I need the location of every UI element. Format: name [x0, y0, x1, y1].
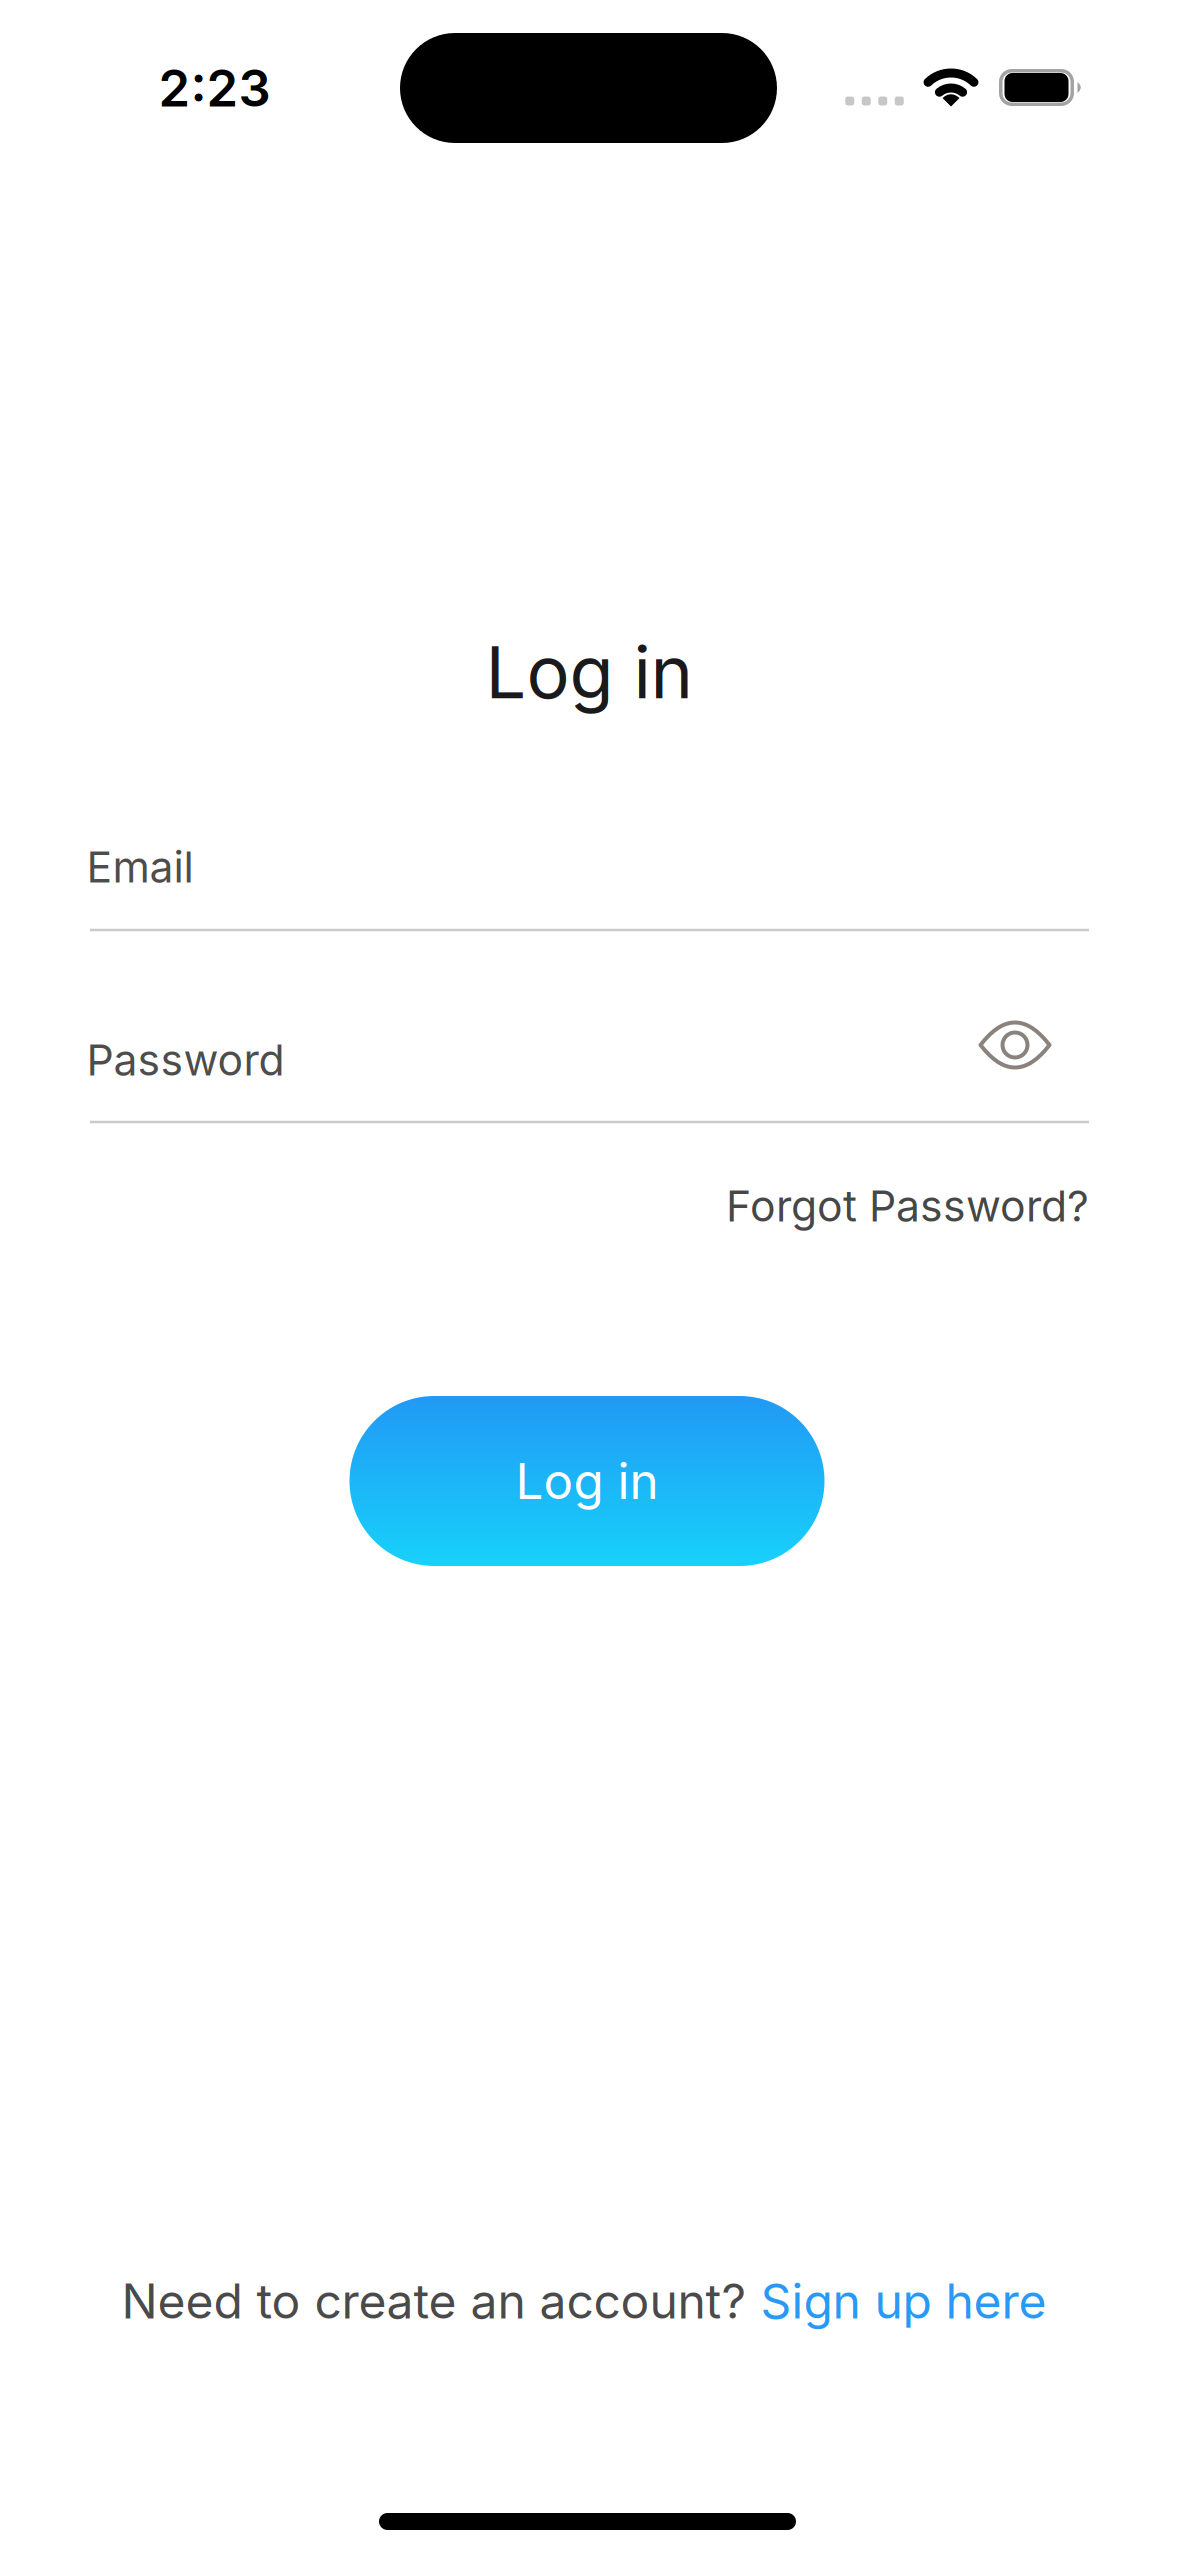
- staticText: 2:23: [158, 58, 270, 118]
- staticText: Log in: [485, 629, 693, 714]
- staticText: Email: [86, 842, 193, 892]
- staticText: Sign up here: [760, 2273, 1046, 2329]
- button[interactable]: Log in: [349, 1396, 824, 1566]
- staticText: Log in: [515, 1452, 658, 1510]
- button[interactable]: Show password: [970, 1010, 1060, 1080]
- staticText: Need to create an account?: [121, 2273, 746, 2329]
- staticText: Password: [86, 1035, 284, 1085]
- staticText: Forgot Password?: [726, 1181, 1089, 1231]
- button[interactable]: Sign up here: [760, 2273, 1046, 2329]
- button[interactable]: Forgot Password?: [726, 1181, 1089, 1231]
